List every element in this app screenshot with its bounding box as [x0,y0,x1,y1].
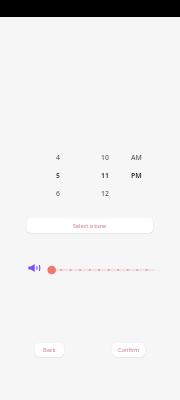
staticText: Confirm [118,346,140,354]
button[interactable]: Select a tune [27,218,153,233]
button[interactable]: Confirm [112,343,145,357]
button[interactable]: Back [35,343,64,357]
staticText: 11 [101,171,109,178]
staticText: Select a tune [73,222,107,229]
staticText: AM [131,153,142,160]
button[interactable]: Volume [28,264,40,272]
staticText: 10 [101,153,109,160]
staticText: 12 [101,189,109,196]
button[interactable]: Volume slider [46,262,158,278]
staticText: PM [131,171,142,178]
staticText: 5 [56,171,60,178]
staticText: 4 [56,153,60,160]
staticText: 6 [56,189,60,196]
staticText: Back [43,346,56,354]
